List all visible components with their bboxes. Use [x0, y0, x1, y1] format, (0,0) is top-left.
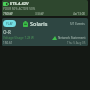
staticText: 750kW [3, 12, 13, 16]
other: Solar status [23, 21, 28, 27]
staticText: Voltage/Usage 7.28 W [3, 36, 34, 40]
staticText: O-R [3, 29, 11, 35]
staticText: 3.5kW [35, 12, 44, 16]
staticText: PLAY [6, 22, 13, 26]
button[interactable]: Battery [2, 0, 88, 16]
staticText: 5/1 Events [70, 22, 85, 26]
staticText: ETS-4.42V [10, 1, 29, 6]
staticText: Thu 5 Aug 05 [67, 41, 86, 45]
button[interactable]: PLAY [3, 20, 16, 27]
other: Battery [3, 2, 9, 6]
staticText: Solaris [30, 20, 48, 27]
staticText: 4x/13:00 [73, 12, 86, 16]
staticText: YOUR 50% ACTIVE 50% [3, 7, 36, 11]
staticText: Network Statement [58, 36, 86, 40]
staticText: 150.61 [3, 41, 13, 45]
